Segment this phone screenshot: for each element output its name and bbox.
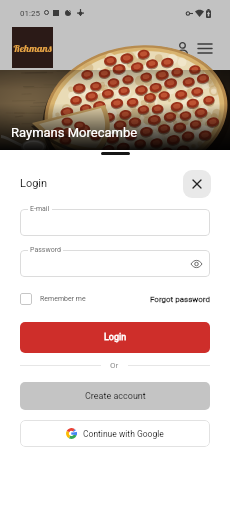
button[interactable]: Account [169, 35, 195, 61]
staticText: Create account [85, 391, 146, 402]
staticText: Password [30, 246, 61, 254]
staticText: Rehmans [13, 41, 52, 54]
button[interactable]: Remember me [20, 293, 86, 305]
button[interactable]: Close [183, 170, 211, 198]
staticText: 01:25 [20, 9, 40, 18]
staticText: Raymans Morecambe [11, 125, 138, 140]
staticText: Login [104, 332, 127, 343]
staticText: Or [110, 361, 119, 370]
button[interactable]: Rehmans [12, 27, 53, 68]
button[interactable] [20, 250, 210, 277]
button[interactable]: Menu [192, 35, 218, 61]
staticText: Login [20, 177, 48, 190]
button[interactable] [20, 209, 210, 236]
button[interactable]: Create account [20, 382, 210, 410]
button[interactable]: Forgot password [150, 295, 211, 304]
staticText: Remember me [40, 295, 86, 303]
button[interactable]: Login [20, 322, 210, 353]
staticText: Continue with Google [83, 429, 164, 439]
button[interactable]: Continue with Google [20, 420, 210, 447]
staticText: E-mail [30, 205, 50, 213]
button[interactable]: Show password [188, 256, 204, 272]
